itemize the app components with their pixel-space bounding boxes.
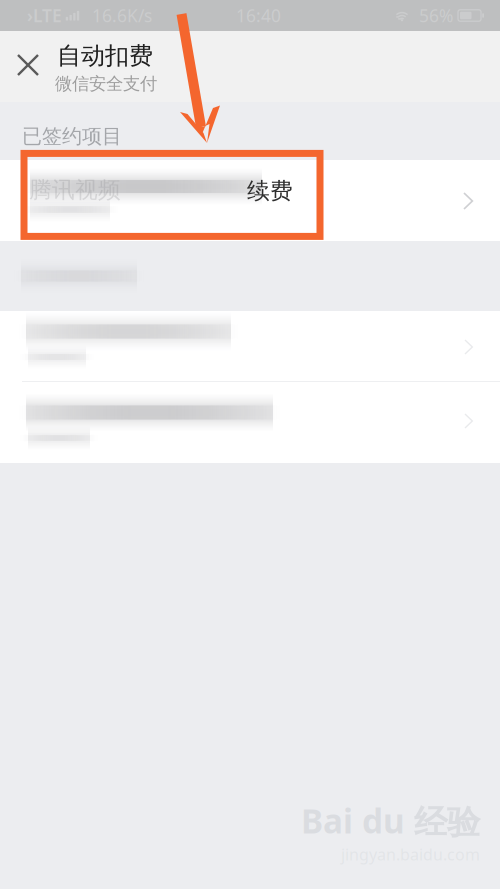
staticText: Bai du 经验 [301,798,480,843]
staticText: 已签约项目 [22,124,122,149]
button[interactable]: 腾讯视频 [0,160,500,241]
staticText: 续费 [247,177,293,205]
staticText: 16:40 [236,4,281,27]
button[interactable] [0,382,500,462]
staticText: 56% [419,4,453,27]
staticText: 自动扣费 [57,41,153,70]
staticText: 微信安全支付 [55,73,157,94]
staticText: ›LTE [27,4,62,27]
staticText: 腾讯视频 [29,176,121,204]
button[interactable]: Close [8,31,48,99]
staticText: 16.6K/s [92,4,152,27]
button[interactable] [0,311,500,381]
